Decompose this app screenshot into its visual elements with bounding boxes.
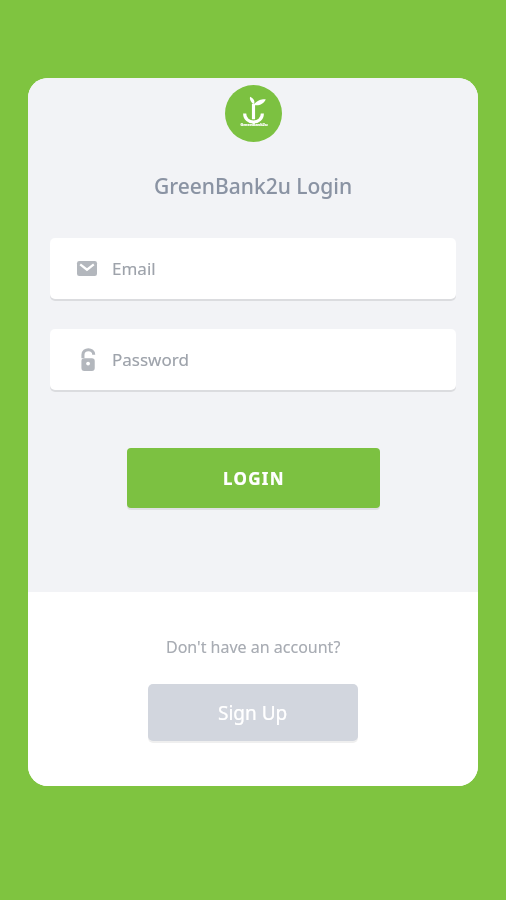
- staticText: Password: [112, 348, 189, 371]
- staticText: GreenBank2u: [240, 122, 268, 127]
- other: Password: [76, 349, 98, 371]
- other: Email: [76, 261, 98, 276]
- button[interactable]: LOGIN: [127, 448, 380, 508]
- staticText: Email: [112, 257, 156, 280]
- staticText: LOGIN: [223, 467, 285, 490]
- staticText: GreenBank2u Login: [154, 172, 353, 201]
- staticText: Don't have an account?: [166, 636, 341, 658]
- button[interactable]: Password: [50, 329, 456, 390]
- button[interactable]: Email: [50, 238, 456, 299]
- staticText: Sign Up: [218, 700, 288, 726]
- button[interactable]: Sign Up: [148, 684, 358, 741]
